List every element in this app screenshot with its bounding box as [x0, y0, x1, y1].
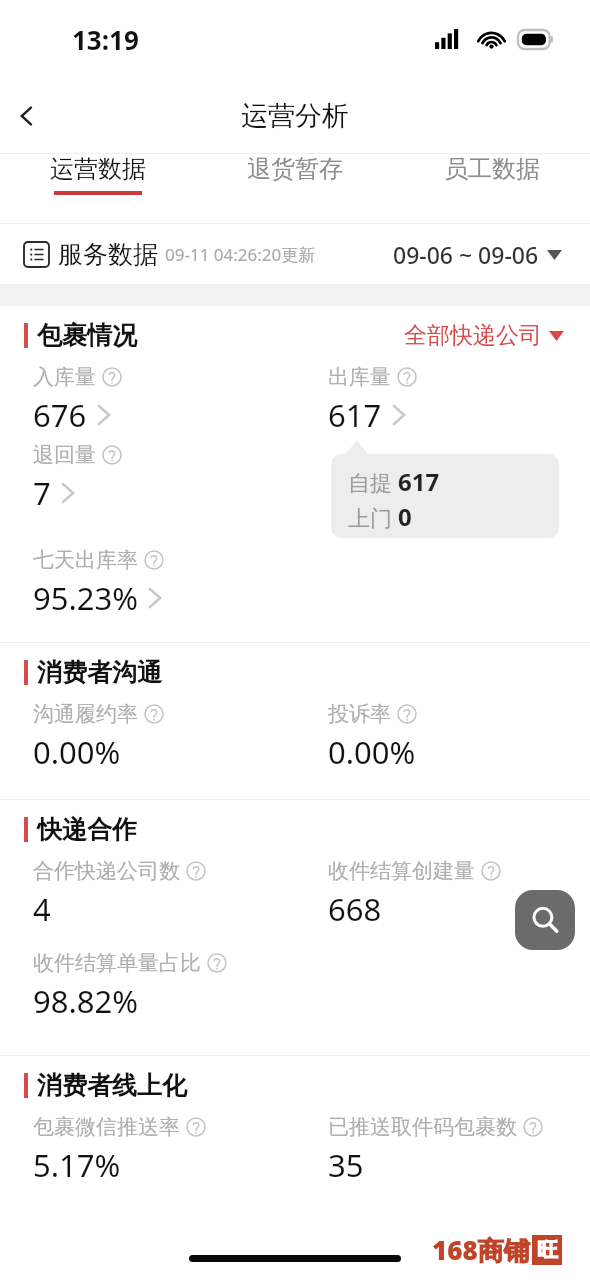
staticText: 已推送取件码包裹数: [328, 1114, 517, 1140]
staticText: 7: [33, 472, 51, 514]
button[interactable]: 投诉率: [295, 701, 590, 773]
button[interactable]: 沟通履约率: [0, 701, 295, 773]
staticText: 退货暂存: [247, 154, 343, 184]
staticText: 合作快递公司数: [33, 858, 180, 884]
button[interactable]: 合作快递公司数: [0, 858, 295, 930]
staticText: 旺: [537, 1237, 558, 1263]
button[interactable]: 09-06 ~ 09-06: [393, 239, 562, 270]
staticText: 4: [33, 888, 51, 930]
staticText: 七天出库率: [33, 547, 138, 573]
button[interactable]: Back: [0, 89, 54, 143]
staticText: 676: [33, 394, 87, 436]
button[interactable]: 退货暂存: [196, 154, 393, 195]
staticText: 退回量: [33, 442, 96, 468]
staticText: 上门: [348, 502, 398, 532]
staticText: 投诉率: [328, 701, 391, 727]
staticText: 全部快递公司: [404, 321, 542, 350]
staticText: 消费者沟通: [37, 657, 162, 688]
staticText: 35: [328, 1144, 364, 1186]
staticText: 0.00%: [328, 731, 416, 773]
staticText: 运营分析: [241, 99, 349, 133]
staticText: 09-11 04:26:20更新: [165, 243, 316, 266]
staticText: 0.00%: [33, 731, 121, 773]
staticText: 13:19: [72, 22, 139, 57]
staticText: 收件结算单量占比: [33, 950, 201, 976]
staticText: 168商铺: [432, 1232, 530, 1268]
staticText: 自提: [348, 467, 398, 497]
staticText: 快递合作: [37, 814, 137, 845]
button[interactable]: 包裹微信推送率: [0, 1114, 295, 1186]
button[interactable]: 入库量: [0, 364, 295, 436]
staticText: 5.17%: [33, 1144, 121, 1186]
button[interactable]: 收件结算单量占比: [0, 950, 295, 1022]
staticText: 运营数据: [50, 154, 146, 184]
button[interactable]: 全部快递公司: [404, 321, 564, 350]
staticText: 入库量: [33, 364, 96, 390]
staticText: 服务数据: [58, 239, 158, 270]
button[interactable]: 员工数据: [393, 154, 590, 195]
staticText: 消费者线上化: [37, 1070, 187, 1101]
staticText: 668: [328, 888, 382, 930]
button[interactable]: 运营数据: [0, 154, 196, 195]
staticText: 95.23%: [33, 577, 138, 619]
button[interactable]: 已推送取件码包裹数: [295, 1114, 590, 1186]
button[interactable]: 出库量: [295, 364, 590, 436]
staticText: 09-06 ~ 09-06: [393, 239, 539, 270]
button[interactable]: Search: [515, 890, 575, 950]
staticText: 617: [398, 465, 440, 498]
staticText: 出库量: [328, 364, 391, 390]
staticText: 617: [328, 394, 382, 436]
button[interactable]: 收件结算创建量: [295, 858, 590, 930]
staticText: 沟通履约率: [33, 701, 138, 727]
staticText: 收件结算创建量: [328, 858, 475, 884]
button[interactable]: 七天出库率: [0, 547, 295, 619]
staticText: 包裹情况: [37, 320, 137, 351]
staticText: 包裹微信推送率: [33, 1114, 180, 1140]
staticText: 员工数据: [444, 154, 540, 184]
staticText: 0: [398, 500, 412, 533]
button[interactable]: 退回量: [0, 442, 295, 514]
staticText: 98.82%: [33, 980, 138, 1022]
